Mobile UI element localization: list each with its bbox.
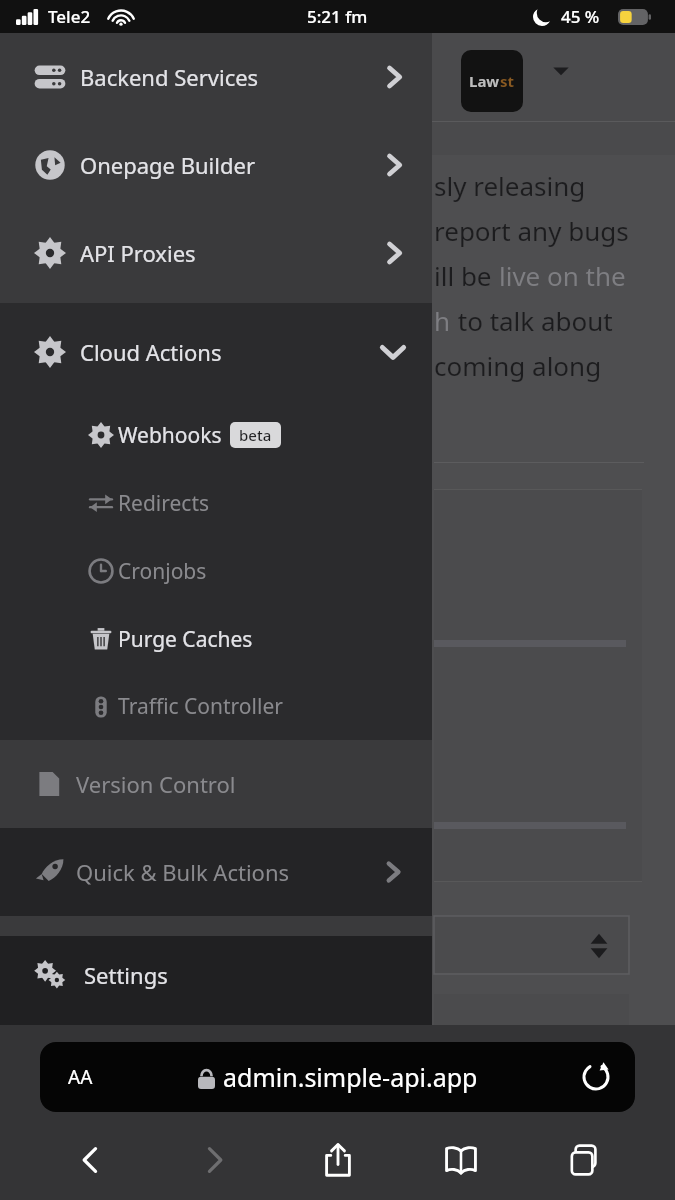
button[interactable]: Backend Services xyxy=(0,33,432,121)
button[interactable]: Onepage Builder xyxy=(0,121,432,209)
staticText: 5:21 fm xyxy=(307,5,368,28)
staticText: 45 % xyxy=(561,5,600,28)
staticText: report any bugs xyxy=(434,213,629,248)
staticText: Quick & Bulk Actions xyxy=(76,857,290,887)
button[interactable]: Purge Caches xyxy=(0,605,432,673)
staticText: Redirects xyxy=(118,489,210,518)
button[interactable]: Share xyxy=(306,1128,370,1192)
staticText: Law xyxy=(469,71,500,91)
button[interactable]: Cronjobs xyxy=(0,537,432,605)
staticText: AA xyxy=(68,1064,93,1090)
button[interactable]: Reload xyxy=(581,1062,611,1092)
button[interactable]: Tabs xyxy=(552,1128,616,1192)
staticText: Purge Caches xyxy=(118,625,253,654)
staticText: ill be xyxy=(434,258,499,293)
button[interactable]: Back xyxy=(59,1128,123,1192)
staticText: Tele2 xyxy=(48,5,91,28)
button[interactable]: AA xyxy=(40,1042,635,1112)
staticText: Webhooks xyxy=(118,421,222,450)
staticText: sly releasing xyxy=(434,168,586,203)
button[interactable]: Settings xyxy=(0,936,432,1025)
button[interactable]: Traffic Controller xyxy=(0,673,432,740)
button[interactable]: API Proxies xyxy=(0,209,432,297)
button[interactable]: Bookmarks xyxy=(429,1128,493,1192)
staticText: Settings xyxy=(84,960,168,990)
staticText: coming along xyxy=(434,348,602,383)
button[interactable]: Webhooks xyxy=(0,401,432,469)
button[interactable]: Quick & Bulk Actions xyxy=(0,828,432,916)
button[interactable]: Redirects xyxy=(0,469,432,537)
staticText: Onepage Builder xyxy=(80,150,255,180)
staticText: h xyxy=(434,303,451,338)
button[interactable]: Forward xyxy=(182,1128,246,1192)
staticText: st xyxy=(500,71,515,91)
button[interactable]: Version Control xyxy=(0,740,432,828)
staticText: Version Control xyxy=(76,769,236,799)
staticText: Cloud Actions xyxy=(80,337,222,367)
staticText: Traffic Controller xyxy=(118,692,283,721)
staticText: to talk about xyxy=(451,303,613,338)
button[interactable]: Cloud Actions xyxy=(0,303,432,401)
staticText: admin.simple-api.app xyxy=(223,1060,478,1094)
staticText: beta xyxy=(239,425,272,445)
staticText: live on the xyxy=(499,258,626,293)
staticText: API Proxies xyxy=(80,238,196,268)
staticText: Cronjobs xyxy=(118,557,207,586)
staticText: Backend Services xyxy=(80,62,259,92)
